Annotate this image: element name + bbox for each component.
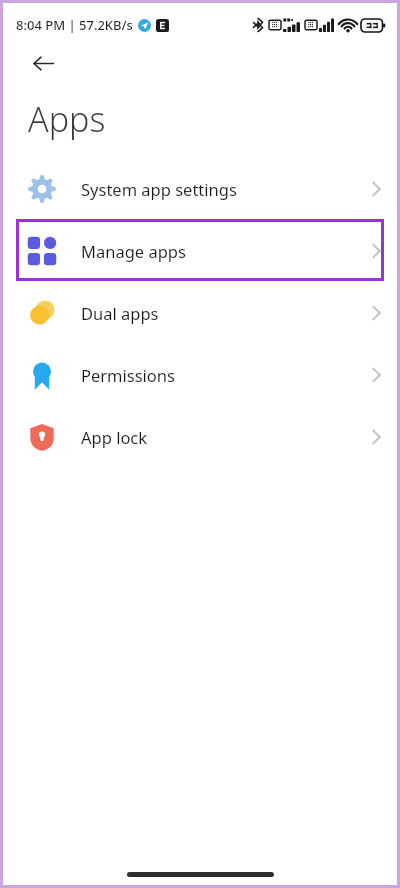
button[interactable]: App lock bbox=[3, 406, 397, 468]
staticText: 8:04 PM | 57.2KB/s bbox=[16, 16, 133, 34]
staticText: Manage apps bbox=[81, 240, 355, 262]
staticText: System app settings bbox=[81, 178, 355, 200]
staticText: Apps bbox=[28, 96, 106, 142]
button[interactable]: Manage apps bbox=[3, 220, 397, 282]
staticText: App lock bbox=[81, 426, 355, 448]
button[interactable]: Back bbox=[21, 41, 65, 85]
button[interactable]: Permissions bbox=[3, 344, 397, 406]
button[interactable]: System app settings bbox=[3, 158, 397, 220]
staticText: Dual apps bbox=[81, 302, 355, 324]
button[interactable]: Dual apps bbox=[3, 282, 397, 344]
staticText: Permissions bbox=[81, 364, 355, 386]
